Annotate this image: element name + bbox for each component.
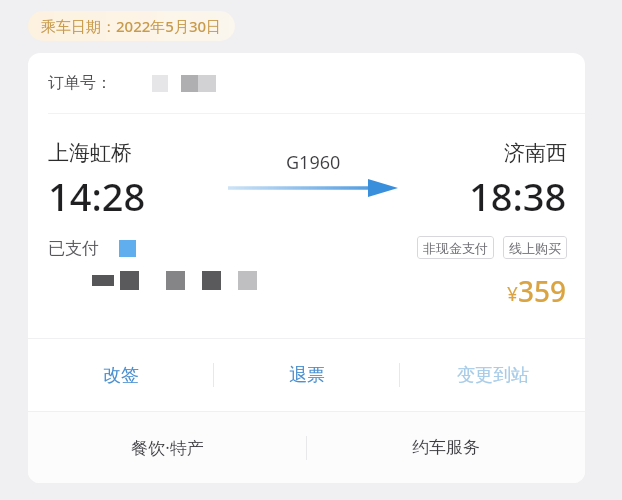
staticText: 非现金支付 bbox=[423, 240, 488, 256]
staticText: 变更到站 bbox=[457, 364, 529, 387]
button[interactable]: 约车服务 bbox=[307, 412, 585, 483]
button[interactable]: 非现金支付 bbox=[417, 236, 494, 259]
button[interactable]: 餐饮·特产 bbox=[28, 412, 306, 483]
staticText: ¥ bbox=[507, 281, 518, 307]
button[interactable]: 线上购买 bbox=[503, 236, 567, 259]
staticText: 359 bbox=[518, 272, 567, 310]
staticText: 18:38 bbox=[469, 170, 567, 222]
staticText: 改签 bbox=[103, 364, 139, 387]
button[interactable]: 改签 bbox=[28, 339, 213, 411]
button[interactable]: 订单号： bbox=[28, 53, 585, 113]
staticText: 约车服务 bbox=[412, 437, 480, 458]
staticText: G1960 bbox=[286, 150, 341, 175]
staticText: 已支付 bbox=[48, 238, 99, 259]
staticText: 线上购买 bbox=[509, 240, 561, 256]
staticText: 乘车日期：2022年5月30日 bbox=[41, 16, 222, 36]
staticText: 订单号： bbox=[48, 73, 112, 93]
staticText: 14:28 bbox=[48, 170, 146, 222]
staticText: 上海虹桥 bbox=[48, 140, 132, 166]
staticText: 济南西 bbox=[504, 140, 567, 166]
staticText: 退票 bbox=[289, 364, 325, 387]
button[interactable]: 退票 bbox=[214, 339, 399, 411]
staticText: 餐饮·特产 bbox=[131, 436, 204, 459]
button[interactable]: 变更到站 bbox=[400, 339, 585, 411]
